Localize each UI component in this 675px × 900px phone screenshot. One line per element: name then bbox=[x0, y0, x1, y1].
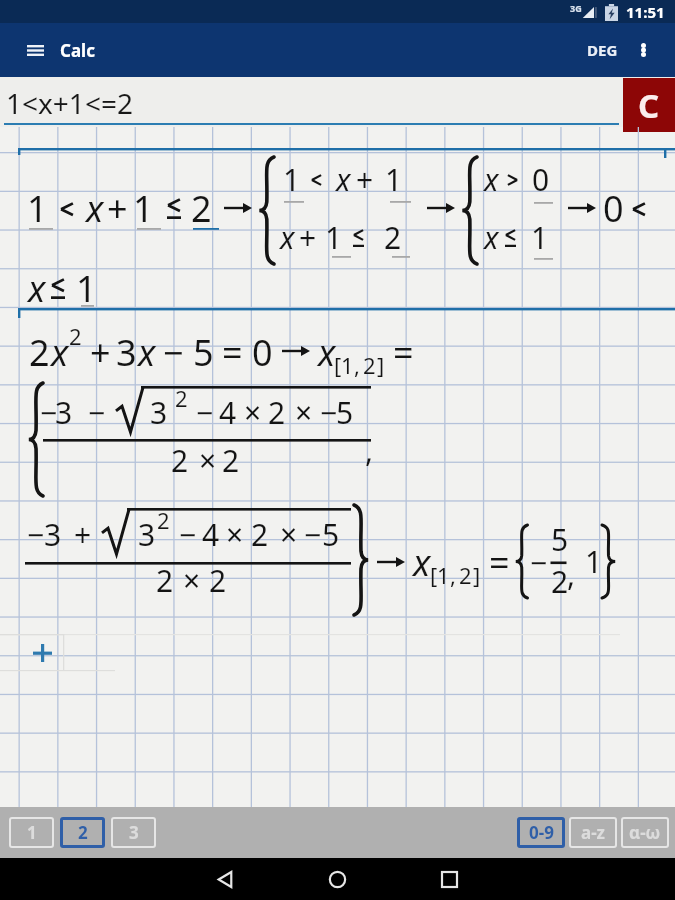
staticText: 2 bbox=[191, 184, 212, 233]
staticText: , bbox=[354, 350, 360, 380]
staticText: , bbox=[365, 430, 374, 471]
staticText: 1<x+1<=2 bbox=[6, 84, 133, 122]
staticText: − bbox=[530, 542, 548, 583]
staticText: 2 bbox=[157, 505, 170, 535]
staticText: x bbox=[28, 264, 46, 313]
staticText: [ bbox=[430, 560, 438, 590]
staticText: − bbox=[196, 392, 214, 433]
staticText: 3 bbox=[55, 392, 73, 433]
staticText: 1 bbox=[531, 217, 549, 258]
staticText: x bbox=[138, 328, 156, 377]
staticText: + bbox=[74, 514, 92, 555]
staticText: x bbox=[413, 538, 431, 587]
staticText: 0-9 bbox=[529, 821, 554, 844]
button[interactable]: More options bbox=[611, 23, 675, 77]
button[interactable]: 0-9 bbox=[517, 817, 565, 848]
staticText: − bbox=[40, 392, 58, 433]
staticText: 3 bbox=[129, 821, 139, 844]
staticText: 2 bbox=[78, 821, 88, 844]
staticText: 2 bbox=[459, 560, 472, 590]
staticText: x bbox=[336, 159, 351, 200]
staticText: − bbox=[27, 514, 45, 555]
staticText: 2 bbox=[29, 328, 50, 377]
staticText: 2 bbox=[175, 383, 188, 413]
staticText: 3G bbox=[570, 2, 582, 14]
button[interactable]: α-ω bbox=[621, 817, 669, 848]
staticText: 1 bbox=[325, 217, 343, 258]
staticText: − bbox=[163, 328, 184, 377]
staticText: x bbox=[484, 159, 499, 200]
staticText: × bbox=[295, 392, 313, 433]
staticText: x bbox=[484, 217, 499, 258]
button[interactable]: Home bbox=[309, 858, 365, 900]
staticText: 5 bbox=[551, 519, 569, 560]
button[interactable]: a-z bbox=[569, 817, 617, 848]
button[interactable]: Navigation menu bbox=[0, 23, 71, 77]
staticText: − bbox=[304, 514, 322, 555]
staticText: = bbox=[393, 328, 414, 377]
staticText: α-ω bbox=[629, 821, 661, 844]
staticText: 1 bbox=[341, 350, 354, 380]
staticText: + bbox=[356, 159, 374, 200]
staticText: 2 bbox=[156, 560, 174, 601]
button[interactable]: 3 bbox=[111, 817, 156, 848]
staticText: 2 bbox=[363, 350, 376, 380]
staticText: 11:51 bbox=[626, 2, 665, 22]
staticText: , bbox=[567, 554, 576, 595]
staticText: 1 bbox=[385, 159, 403, 200]
staticText: × bbox=[226, 514, 244, 555]
staticText: 1 bbox=[76, 264, 97, 313]
button[interactable]: C bbox=[623, 77, 675, 127]
staticText: × bbox=[199, 440, 217, 481]
staticText: 1 bbox=[437, 560, 450, 590]
button[interactable]: 2 bbox=[60, 817, 105, 848]
staticText: 2 bbox=[268, 392, 286, 433]
staticText: × bbox=[280, 514, 298, 555]
staticText: 2 bbox=[209, 560, 227, 601]
staticText: − bbox=[179, 514, 197, 555]
staticText: , bbox=[450, 560, 456, 590]
staticText: 0 bbox=[252, 328, 273, 377]
staticText: × bbox=[244, 392, 262, 433]
staticText: 4 bbox=[202, 514, 220, 555]
staticText: 3 bbox=[138, 514, 156, 555]
staticText: = bbox=[489, 538, 510, 587]
staticText: − bbox=[320, 392, 338, 433]
staticText: x bbox=[280, 217, 295, 258]
staticText: 1 bbox=[133, 184, 154, 233]
staticText: 5 bbox=[336, 392, 354, 433]
staticText: 2 bbox=[222, 440, 240, 481]
staticText: 1 bbox=[283, 159, 301, 200]
staticText: 2 bbox=[171, 440, 189, 481]
staticText: − bbox=[88, 392, 106, 433]
staticText: 3 bbox=[44, 514, 62, 555]
staticText: 0 bbox=[532, 159, 550, 200]
staticText: x bbox=[86, 184, 104, 233]
staticText: x bbox=[51, 328, 69, 377]
staticText: × bbox=[183, 560, 201, 601]
staticText: 1 bbox=[27, 821, 37, 844]
button[interactable]: 1 bbox=[9, 817, 54, 848]
button[interactable]: Back bbox=[197, 858, 253, 900]
staticText: x bbox=[318, 328, 336, 377]
staticText: 2 bbox=[384, 217, 402, 258]
button[interactable]: Recent apps bbox=[421, 858, 477, 900]
staticText: 5 bbox=[193, 328, 214, 377]
staticText: + bbox=[90, 328, 111, 377]
staticText: 2 bbox=[251, 514, 269, 555]
staticText: 3 bbox=[150, 392, 168, 433]
staticText: [ bbox=[334, 350, 342, 380]
staticText: 2 bbox=[69, 321, 82, 351]
button[interactable]: DEG bbox=[578, 26, 627, 74]
staticText: + bbox=[107, 184, 128, 233]
staticText: 2 bbox=[551, 561, 569, 602]
staticText: 1 bbox=[585, 541, 603, 582]
staticText: DEG bbox=[587, 40, 618, 60]
staticText: ] bbox=[473, 560, 481, 590]
staticText: 3 bbox=[116, 328, 137, 377]
staticText: a-z bbox=[581, 821, 606, 844]
staticText: = bbox=[222, 328, 243, 377]
staticText: 1 bbox=[27, 184, 48, 233]
staticText: 4 bbox=[219, 392, 237, 433]
staticText: ] bbox=[377, 350, 385, 380]
